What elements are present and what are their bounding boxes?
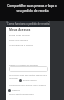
button[interactable]	[9, 66, 48, 72]
staticText: Envie suas provas	[9, 33, 30, 36]
staticText: Outras opções disponíveis	[9, 93, 34, 96]
staticText: Digite o código do pedido	[9, 63, 38, 66]
button[interactable]: Galeria	[8, 89, 20, 92]
staticText: Meus Acessos	[9, 28, 31, 32]
button[interactable]: Enviar agora	[6, 79, 50, 82]
staticText: seu pedido de receita	[16, 9, 49, 13]
staticText: Compartilhe suas provas e faça o	[7, 4, 57, 8]
staticText: Acompanhe o status	[9, 43, 34, 46]
staticText: Ou escolha uma das opções abaixo para co…	[9, 74, 50, 80]
staticText: Galeria	[12, 89, 20, 92]
button[interactable]: Como funciona o pedido de receita	[6, 21, 50, 27]
staticText: Peça sua receita	[9, 38, 28, 41]
staticText: Compartilhe suas provas com o médico	[9, 84, 46, 87]
staticText: Como funciona o pedido de receita	[7, 22, 50, 26]
staticText: Enviar agora	[23, 79, 37, 82]
